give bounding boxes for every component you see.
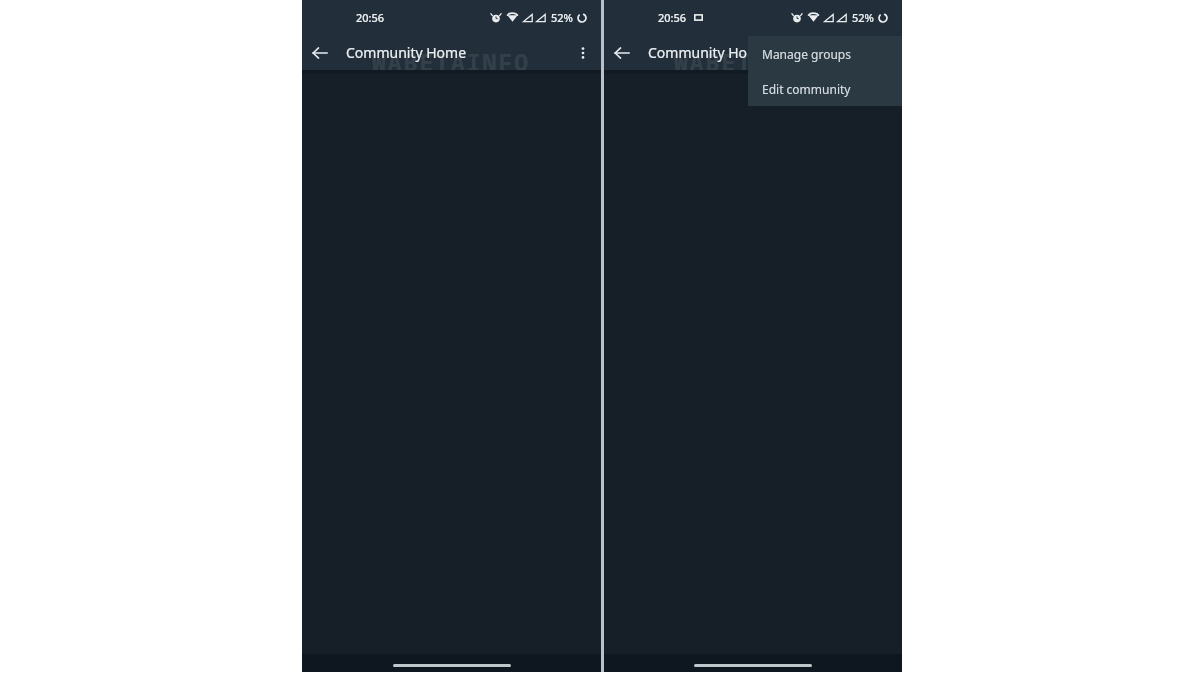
staticText: 20:56 bbox=[356, 10, 385, 25]
staticText: 20:56 bbox=[658, 10, 687, 25]
staticText: 52% bbox=[852, 10, 874, 25]
staticText: Community Home bbox=[346, 43, 467, 62]
button[interactable]: Edit community bbox=[748, 71, 902, 106]
staticText: Community Home bbox=[648, 43, 769, 62]
button[interactable]: Manage groups bbox=[748, 36, 902, 71]
button[interactable]: Back bbox=[604, 35, 640, 70]
staticText: WABETAINFO bbox=[372, 46, 531, 77]
button[interactable]: Back bbox=[302, 35, 338, 70]
button[interactable]: More options bbox=[565, 35, 601, 70]
staticText: Edit community bbox=[762, 81, 851, 97]
staticText: 52% bbox=[551, 10, 573, 25]
staticText: WABETAINFO bbox=[674, 46, 833, 77]
staticText: Manage groups bbox=[762, 46, 851, 62]
